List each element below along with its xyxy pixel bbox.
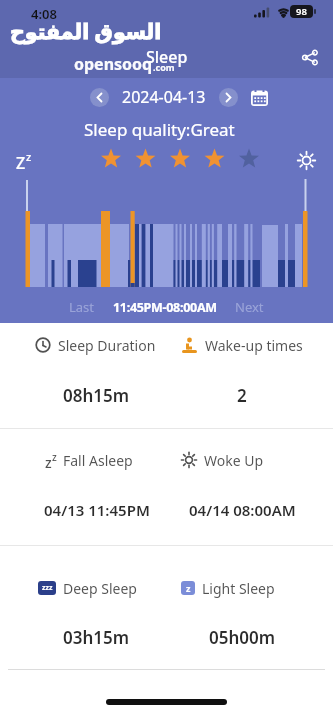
staticText: Sleep xyxy=(146,46,188,68)
staticText: 2024-04-13 xyxy=(122,86,206,108)
staticText: .com xyxy=(153,61,175,73)
staticText: Fall Asleep xyxy=(63,451,133,470)
staticText: zzz xyxy=(42,583,53,593)
staticText: Sleep Duration xyxy=(58,336,156,355)
button[interactable] xyxy=(250,88,269,107)
button[interactable] xyxy=(219,88,238,107)
button[interactable]: Woke Up xyxy=(181,450,264,470)
staticText: 08h15m xyxy=(63,384,130,404)
button[interactable]: z xyxy=(45,450,133,470)
button[interactable] xyxy=(302,50,318,65)
button[interactable] xyxy=(90,88,109,107)
staticText: 05h00m xyxy=(209,626,276,646)
staticText: 11:45PM-08:00AM xyxy=(113,299,217,316)
staticText: z xyxy=(52,450,57,464)
button[interactable]: z xyxy=(181,578,275,598)
staticText: z xyxy=(26,149,32,164)
staticText: Sleep quality:Great xyxy=(84,118,235,141)
staticText: السوق المفتوح xyxy=(10,17,162,45)
staticText: 03h15m xyxy=(63,626,130,646)
staticText: Wake-up times xyxy=(205,336,303,355)
staticText: 2 xyxy=(237,384,247,404)
staticText: Woke Up xyxy=(204,451,264,470)
staticText: z xyxy=(186,582,191,594)
button[interactable]: zzz xyxy=(38,578,137,598)
staticText: 4:08 xyxy=(31,5,57,23)
staticText: Deep Sleep xyxy=(63,579,137,598)
button[interactable]: Sleep Duration xyxy=(35,335,156,355)
staticText: 04/13 11:45PM xyxy=(44,500,150,520)
button[interactable]: Wake-up times xyxy=(181,335,303,355)
staticText: z xyxy=(45,453,52,472)
button[interactable]: Last xyxy=(69,298,95,316)
staticText: Z xyxy=(16,152,26,174)
staticText: 04/14 08:00AM xyxy=(189,500,296,520)
staticText: 98 xyxy=(296,5,307,18)
staticText: Light Sleep xyxy=(202,579,275,598)
staticText: opensooq xyxy=(74,53,153,75)
button[interactable]: Next xyxy=(235,298,264,316)
